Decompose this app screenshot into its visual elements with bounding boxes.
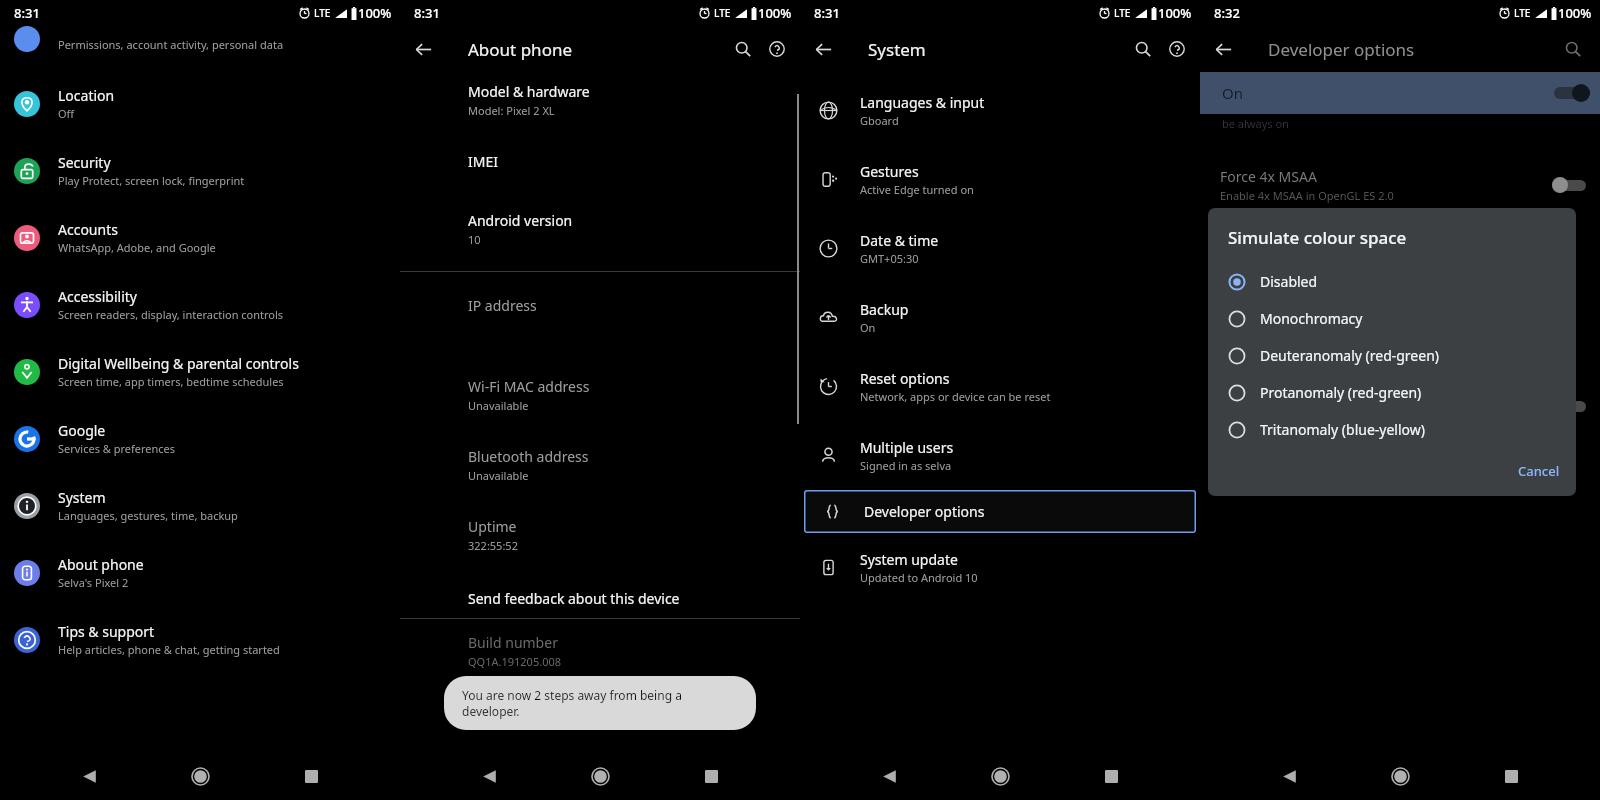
button[interactable]: Tritanomaly (blue-yellow) [1208, 411, 1576, 448]
staticText: Off [58, 106, 75, 121]
staticText: Uptime [468, 517, 517, 536]
button[interactable]: Permissions, account activity, personal … [0, 26, 400, 63]
button[interactable]: Reset options [800, 358, 1200, 415]
button[interactable]: Location [0, 75, 400, 132]
button[interactable]: System update [800, 539, 1200, 596]
staticText: 100% [1158, 4, 1192, 22]
staticText: Bluetooth address [468, 447, 589, 466]
button[interactable]: Back [1206, 32, 1240, 66]
staticText: be always on [1222, 116, 1289, 131]
button[interactable]: IP address [400, 286, 800, 325]
button[interactable]: Help [1160, 32, 1194, 66]
button[interactable]: Wi-Fi MAC address [400, 367, 800, 423]
staticText: 8:31 [414, 4, 440, 22]
button[interactable]: Cancel [1502, 454, 1576, 488]
button[interactable]: Help [760, 32, 794, 66]
staticText: Accessibility [58, 287, 137, 306]
staticText: Screen readers, display, interaction con… [58, 307, 284, 322]
button[interactable]: Accounts [0, 209, 400, 266]
button[interactable]: Force 4x MSAA [1200, 159, 1600, 211]
staticText: 100% [358, 4, 392, 22]
button[interactable]: Digital Wellbeing & parental controls [0, 343, 400, 400]
staticText: Deuteranomaly (red-green) [1260, 346, 1440, 365]
button[interactable]: About phone [0, 544, 400, 601]
button[interactable]: Recents [289, 754, 333, 798]
staticText: Android version [468, 211, 573, 230]
button[interactable]: Protanomaly (red-green) [1208, 374, 1576, 411]
staticText: Wi-Fi MAC address [468, 377, 590, 396]
button[interactable]: Send feedback about this device [400, 579, 800, 618]
button[interactable]: Home [578, 754, 622, 798]
staticText: Location [58, 86, 115, 105]
button[interactable]: Android version [400, 201, 800, 257]
staticText: 322:55:52 [468, 538, 518, 553]
button[interactable]: Multiple users [800, 427, 1200, 484]
button[interactable]: Back [1267, 754, 1311, 798]
staticText: Permissions, account activity, personal … [58, 37, 284, 52]
button[interactable]: Back [406, 32, 440, 66]
button[interactable]: Home [178, 754, 222, 798]
button[interactable]: Back [806, 32, 840, 66]
button[interactable]: Strict mode enabled [1200, 377, 1600, 435]
staticText: QQ1A.191205.008 [468, 654, 562, 669]
staticText: Protanomaly (red-green) [1260, 383, 1422, 402]
button[interactable]: Home [1378, 754, 1422, 798]
staticText: System [868, 38, 926, 61]
staticText: Help articles, phone & chat, getting sta… [58, 642, 280, 657]
staticText: 10 [468, 232, 481, 247]
button[interactable]: Recents [1089, 754, 1133, 798]
button[interactable]: Search [1126, 32, 1160, 66]
staticText: Screen time, app timers, bedtime schedul… [58, 374, 284, 389]
staticText: Disabled [1260, 272, 1318, 291]
staticText: Build number [468, 633, 558, 652]
button[interactable]: Languages & input [800, 82, 1200, 139]
button[interactable]: Recents [689, 754, 733, 798]
staticText: Digital Wellbeing & parental controls [58, 354, 299, 373]
button[interactable]: Gestures [800, 151, 1200, 208]
button[interactable]: Disabled [1208, 263, 1576, 300]
button[interactable]: Tips & support [0, 611, 400, 668]
staticText: Flash screen when apps do long operation… [1220, 402, 1386, 431]
staticText: Multiple users [860, 438, 954, 457]
button[interactable]: IMEI [400, 142, 800, 181]
button[interactable]: Back [467, 754, 511, 798]
staticText: LTE [1114, 6, 1131, 20]
staticText: Gboard [860, 113, 899, 128]
staticText: Languages, gestures, time, backup [58, 508, 238, 523]
staticText: About phone [58, 555, 144, 574]
button[interactable]: Search [726, 32, 760, 66]
button[interactable]: Recents [1489, 754, 1533, 798]
button[interactable]: Developer options [804, 490, 1196, 533]
button[interactable]: Date & time [800, 220, 1200, 277]
staticText: 8:31 [14, 4, 40, 22]
button[interactable]: Accessibility [0, 276, 400, 333]
staticText: Services & preferences [58, 441, 176, 456]
staticText: Date & time [860, 231, 939, 250]
button[interactable]: Uptime [400, 507, 800, 563]
staticText: Selva's Pixel 2 [58, 575, 129, 590]
staticText: 100% [758, 4, 792, 22]
button[interactable]: Search [1556, 32, 1590, 66]
button[interactable]: Security [0, 142, 400, 199]
button[interactable]: Model & hardware [400, 72, 800, 128]
button[interactable]: System [0, 477, 400, 534]
button[interactable]: Back [867, 754, 911, 798]
button[interactable]: Backup [800, 289, 1200, 346]
button[interactable]: Build number [400, 623, 800, 679]
button[interactable]: Back [67, 754, 111, 798]
staticText: Security [58, 153, 111, 172]
staticText: LTE [314, 6, 331, 20]
button[interactable]: On [1200, 72, 1600, 114]
staticText: GMT+05:30 [860, 251, 919, 266]
button[interactable]: Deuteranomaly (red-green) [1208, 337, 1576, 374]
button[interactable]: Bluetooth address [400, 437, 800, 493]
staticText: Play Protect, screen lock, fingerprint [58, 173, 245, 188]
staticText: Unavailable [468, 468, 529, 483]
button[interactable]: Google [0, 410, 400, 467]
staticText: LTE [1514, 6, 1531, 20]
button[interactable]: Profile HWUI rendering [1200, 449, 1600, 501]
staticText: Unavailable [468, 398, 529, 413]
button[interactable]: Home [978, 754, 1022, 798]
button[interactable]: Monochromacy [1208, 300, 1576, 337]
